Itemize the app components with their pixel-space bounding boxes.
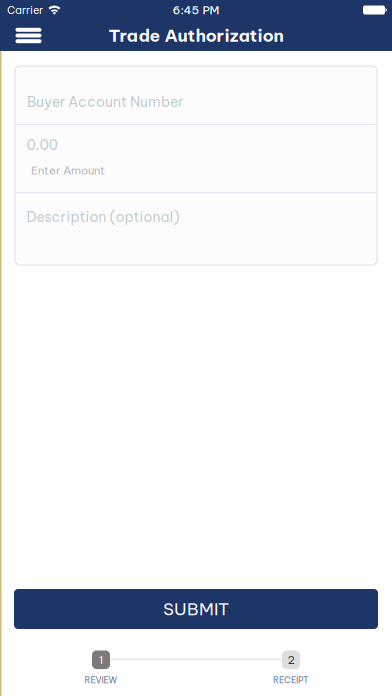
staticText: 1 — [99, 653, 103, 667]
staticText: Trade Authorization — [108, 24, 283, 46]
button[interactable]: 1 — [81, 650, 121, 686]
button[interactable]: 0.00 — [15, 125, 377, 192]
staticText: Description (optional) — [26, 208, 179, 226]
button[interactable]: 2 — [271, 650, 311, 686]
staticText: 2 — [287, 653, 294, 667]
staticText: Buyer Account Number — [27, 93, 183, 111]
staticText: 0.00 — [26, 136, 57, 154]
button[interactable]: SUBMIT — [14, 589, 378, 629]
staticText: RECEIPT — [273, 675, 309, 686]
staticText: SUBMIT — [163, 598, 229, 620]
button[interactable]: Buyer Account Number — [15, 66, 377, 124]
button[interactable]: Open menu — [8, 21, 48, 50]
button[interactable]: Description (optional) — [15, 193, 377, 265]
staticText: Enter Amount — [31, 163, 105, 177]
staticText: Carrier — [7, 3, 43, 17]
staticText: REVIEW — [84, 675, 117, 686]
staticText: 6:45 PM — [172, 3, 219, 17]
